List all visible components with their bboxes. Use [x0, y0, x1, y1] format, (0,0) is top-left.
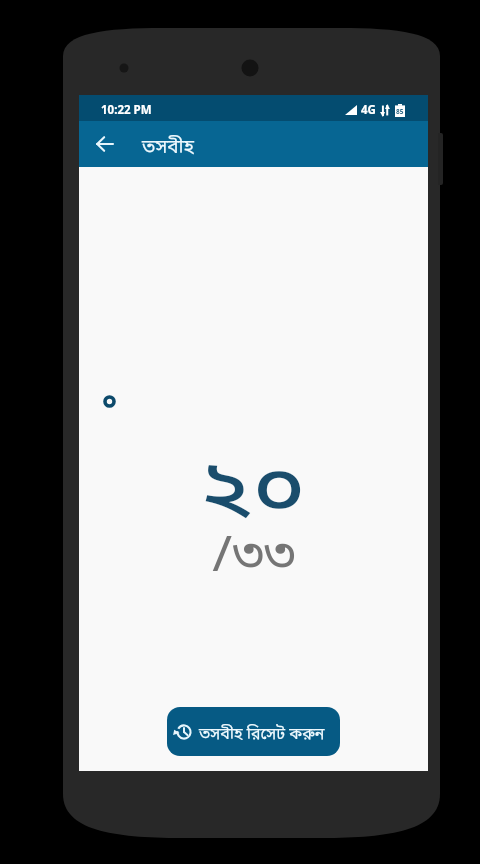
staticText: তসবীহ রিসেট করুন: [199, 724, 325, 745]
staticText: ২০: [198, 443, 306, 545]
staticText: তসবীহ: [142, 136, 194, 161]
staticText: 85: [396, 107, 404, 116]
button[interactable]: Count tasbih: [79, 167, 428, 771]
staticText: 10:22 PM: [101, 102, 152, 118]
button[interactable]: Back: [83, 123, 125, 165]
staticText: 4G: [361, 102, 376, 118]
button[interactable]: তসবীহ রিসেট করুন: [167, 707, 340, 756]
staticText: /৩৩: [212, 525, 296, 591]
